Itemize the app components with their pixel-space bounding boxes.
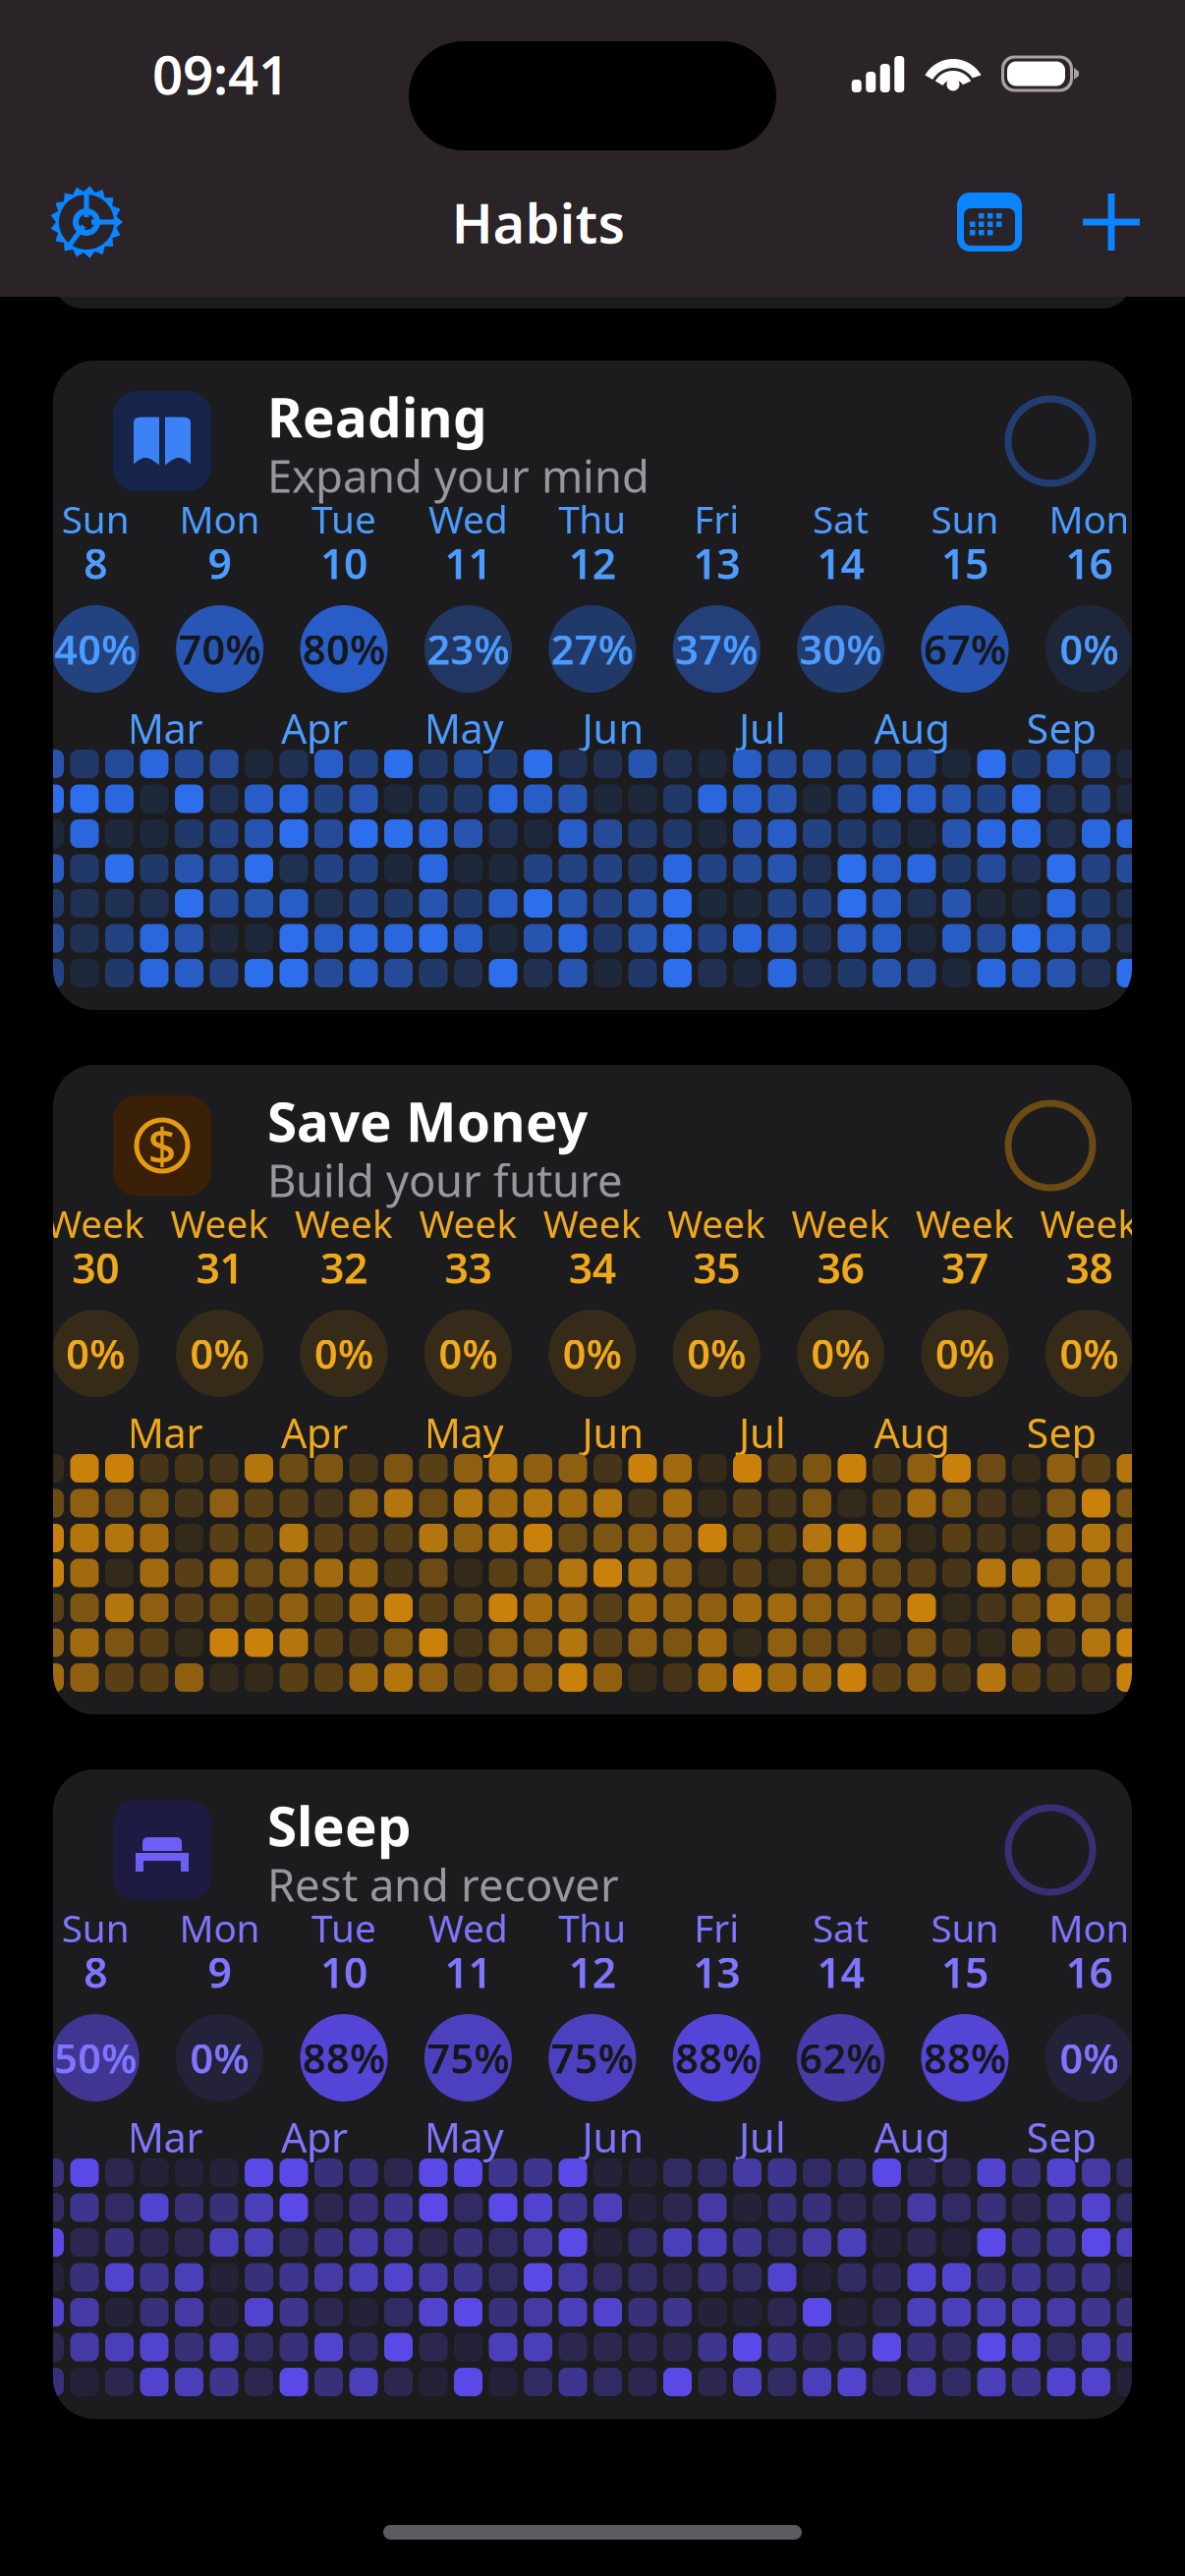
staticText: 0% — [190, 1326, 249, 1380]
staticText: Sat — [813, 493, 869, 544]
staticText: 11 — [445, 535, 492, 591]
staticText: 15 — [941, 1944, 988, 2000]
staticText: Jul — [739, 701, 786, 755]
staticText: Sep — [1026, 1406, 1096, 1459]
staticText: 50% — [54, 2031, 137, 2085]
staticText: 23% — [427, 622, 509, 676]
staticText: May — [424, 2110, 504, 2164]
staticText: Mar — [127, 701, 203, 755]
staticText: 31 — [196, 1240, 243, 1295]
staticText: Rest and recover — [267, 1855, 619, 1914]
staticText: 37% — [675, 622, 758, 676]
staticText: Mon — [1049, 493, 1129, 544]
staticText: Week — [916, 1198, 1014, 1248]
staticText: 0% — [1060, 1326, 1119, 1380]
staticText: Save Money — [267, 1085, 588, 1157]
staticText: 14 — [817, 535, 864, 591]
staticText: Wed — [428, 1902, 508, 1953]
staticText: 62% — [799, 2031, 882, 2085]
staticText: Jul — [739, 2110, 786, 2164]
staticText: 40% — [54, 622, 137, 676]
staticText: Tue — [311, 493, 376, 544]
staticText: 13 — [693, 1944, 740, 2000]
staticText: Sep — [1026, 2110, 1096, 2164]
staticText: Habits — [451, 185, 625, 259]
staticText: 0% — [314, 1326, 373, 1380]
staticText: 0% — [439, 1326, 498, 1380]
staticText: Mar — [127, 1406, 203, 1459]
button[interactable]: Add habit — [1051, 165, 1171, 279]
staticText: Wed — [428, 493, 508, 544]
staticText: Mar — [127, 2110, 203, 2164]
staticText: Mon — [179, 1902, 260, 1953]
staticText: Week — [667, 1198, 766, 1248]
staticText: May — [424, 701, 504, 755]
staticText: Thu — [558, 493, 626, 544]
staticText: $ — [148, 1112, 176, 1178]
staticText: Apr — [281, 1406, 348, 1459]
staticText: Jun — [582, 2110, 644, 2164]
staticText: Mon — [179, 493, 260, 544]
staticText: Sun — [931, 493, 999, 544]
staticText: Week — [543, 1198, 641, 1248]
staticText: Week — [171, 1198, 269, 1248]
staticText: 15 — [941, 535, 988, 591]
staticText: 0% — [66, 1326, 125, 1380]
staticText: Apr — [281, 701, 348, 755]
staticText: 37 — [941, 1240, 988, 1295]
staticText: 80% — [303, 622, 385, 676]
staticText: 16 — [1066, 535, 1113, 591]
staticText: Week — [1040, 1198, 1138, 1248]
staticText: Jul — [739, 1406, 786, 1459]
staticText: 88% — [303, 2031, 385, 2085]
staticText: 12 — [569, 535, 616, 591]
staticText: May — [424, 1406, 504, 1459]
staticText: 14 — [817, 1944, 864, 2000]
staticText: Week — [419, 1198, 517, 1248]
staticText: 0% — [190, 2031, 249, 2085]
staticText: Apr — [281, 2110, 348, 2164]
staticText: Jun — [582, 701, 644, 755]
staticText: Sep — [1026, 701, 1096, 755]
staticText: Week — [46, 1198, 145, 1248]
button[interactable]: Settings — [24, 165, 149, 279]
staticText: Sleep — [267, 1790, 412, 1861]
staticText: 88% — [675, 2031, 758, 2085]
staticText: 10 — [320, 535, 367, 591]
staticText: 0% — [1060, 622, 1119, 676]
staticText: 34 — [569, 1240, 616, 1295]
staticText: 27% — [551, 622, 634, 676]
staticText: 11 — [445, 1944, 492, 2000]
staticText: Aug — [874, 2110, 950, 2164]
staticText: Jun — [582, 1406, 644, 1459]
staticText: 9 — [208, 535, 231, 591]
staticText: Tue — [311, 1902, 376, 1953]
staticText: 0% — [935, 1326, 994, 1380]
staticText: Aug — [874, 701, 950, 755]
staticText: 10 — [320, 1944, 367, 2000]
staticText: Build your future — [267, 1150, 623, 1210]
staticText: 16 — [1066, 1944, 1113, 2000]
button[interactable]: Calendar view — [928, 165, 1051, 279]
staticText: 30% — [799, 622, 882, 676]
staticText: Reading — [267, 381, 487, 452]
staticText: Thu — [558, 1902, 626, 1953]
staticText: Sun — [62, 1902, 129, 1953]
staticText: 75% — [551, 2031, 634, 2085]
staticText: 88% — [924, 2031, 1006, 2085]
staticText: Week — [792, 1198, 890, 1248]
staticText: 0% — [1060, 2031, 1119, 2085]
staticText: Sun — [62, 493, 129, 544]
staticText: 8 — [84, 535, 107, 591]
staticText: 8 — [84, 1944, 107, 2000]
staticText: 32 — [320, 1240, 367, 1295]
staticText: 67% — [924, 622, 1006, 676]
staticText: 38 — [1066, 1240, 1113, 1295]
staticText: 33 — [445, 1240, 492, 1295]
staticText: Aug — [874, 1406, 950, 1459]
staticText: 75% — [427, 2031, 509, 2085]
staticText: Expand your mind — [267, 446, 649, 505]
staticText: Fri — [694, 1902, 739, 1953]
staticText: 12 — [569, 1944, 616, 2000]
staticText: Fri — [694, 493, 739, 544]
